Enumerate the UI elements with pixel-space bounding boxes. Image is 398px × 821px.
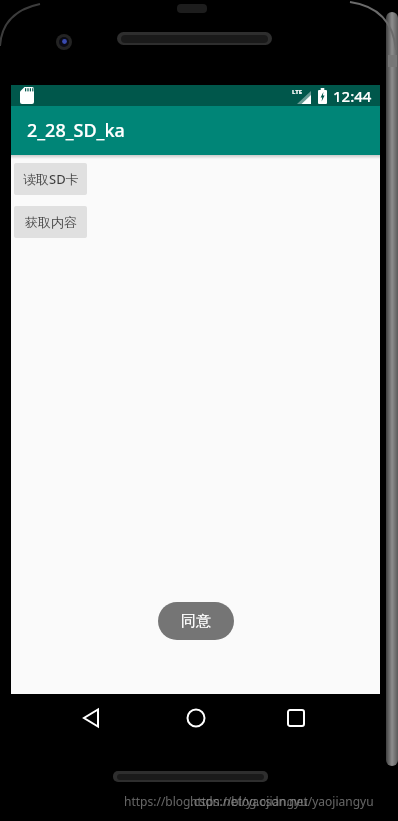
button[interactable] <box>82 708 102 728</box>
staticText: 12:44 <box>333 86 372 106</box>
staticText: 2_28_SD_ka <box>27 118 125 143</box>
staticText: 同意 <box>181 612 211 631</box>
staticText: https://blog.csdn.net/yaojiangyu <box>124 793 308 809</box>
staticText: LTE <box>292 88 303 96</box>
button[interactable]: 获取内容 <box>14 206 87 238</box>
button[interactable] <box>186 708 206 728</box>
staticText: 获取内容 <box>25 214 77 230</box>
button[interactable] <box>286 708 306 728</box>
button[interactable]: 读取SD卡 <box>14 163 87 195</box>
staticText: 读取SD卡 <box>23 170 79 188</box>
staticText: https://blog.csdn.net/yaojiangyu <box>190 793 374 809</box>
